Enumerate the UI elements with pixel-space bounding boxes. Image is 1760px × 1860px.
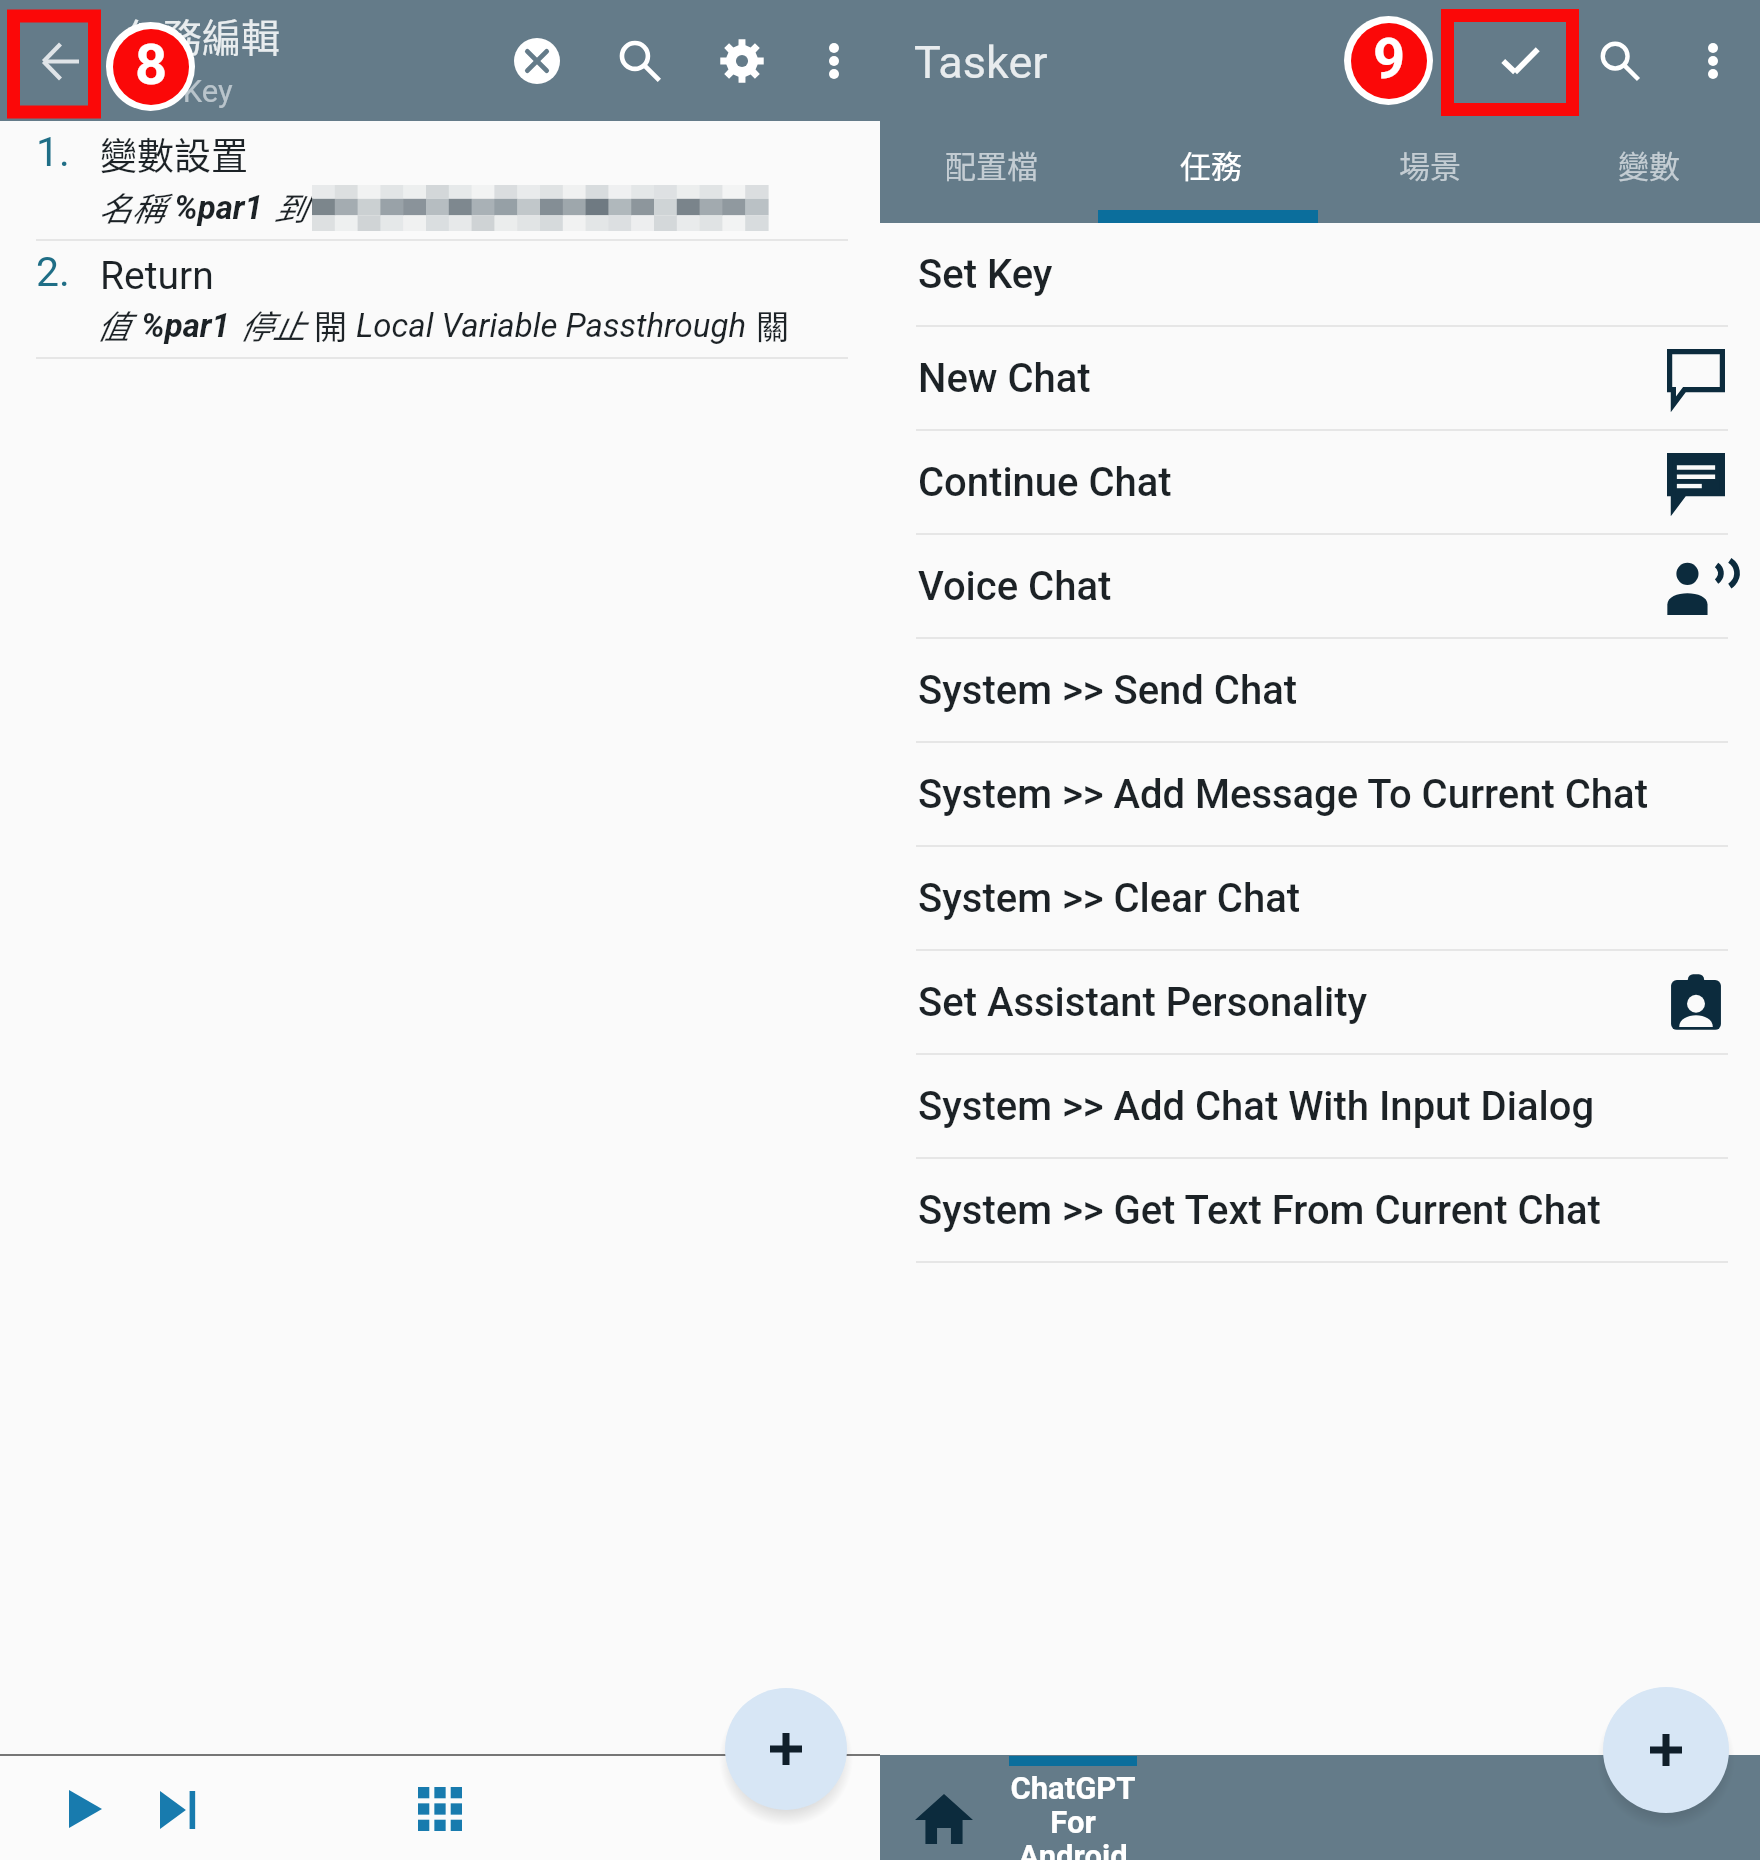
button[interactable]: Home	[906, 1781, 982, 1857]
button[interactable]: Accept	[1472, 10, 1568, 111]
button[interactable]: More options	[786, 10, 882, 111]
button[interactable]: Cancel	[489, 10, 585, 111]
staticText: 9	[1373, 26, 1406, 92]
staticText: System >> Clear Chat	[918, 875, 1301, 922]
staticText: %par1	[174, 188, 263, 227]
button[interactable]: System >> Get Text From Current Chat	[880, 1159, 1760, 1263]
button[interactable]: System >> Clear Chat	[880, 847, 1760, 951]
button[interactable]: Voice Chat	[880, 535, 1760, 639]
button[interactable]: 1.	[0, 121, 880, 241]
button[interactable]: Add action	[725, 1688, 847, 1810]
staticText: System >> Get Text From Current Chat	[918, 1187, 1601, 1234]
button[interactable]: System >> Add Chat With Input Dialog	[880, 1055, 1760, 1159]
button[interactable]: New Chat	[880, 327, 1760, 431]
button[interactable]: Add task	[1603, 1687, 1729, 1813]
button[interactable]: 變數	[1539, 121, 1759, 223]
staticText: 名稱	[98, 183, 164, 231]
button[interactable]: More options	[1665, 10, 1760, 111]
staticText: Set Assistant Personality	[918, 979, 1368, 1026]
staticText: 1.	[36, 128, 70, 176]
staticText: Set Key	[918, 251, 1053, 298]
button[interactable]: Set Assistant Personality	[880, 951, 1760, 1055]
button[interactable]: System >> Add Message To Current Chat	[880, 743, 1760, 847]
button[interactable]: 2.	[0, 241, 880, 359]
staticText: ChatGPT For Android	[1010, 1770, 1136, 1860]
staticText: 2.	[36, 248, 70, 296]
staticText: 任務	[1180, 142, 1242, 187]
staticText: 變數設置	[100, 127, 248, 181]
staticText: System >> Send Chat	[918, 667, 1298, 714]
staticText: 關	[756, 301, 789, 349]
staticText: Tasker	[914, 36, 1048, 89]
button[interactable]: Run	[52, 1776, 118, 1842]
button[interactable]: Back	[7, 9, 102, 119]
staticText: 值	[96, 301, 129, 349]
staticText: 到	[273, 183, 306, 231]
staticText: New Chat	[918, 355, 1091, 402]
staticText: Return	[100, 253, 214, 299]
button[interactable]: 場景	[1320, 121, 1540, 223]
button[interactable]: Search	[1572, 10, 1668, 111]
button[interactable]: Grid	[405, 1774, 475, 1844]
staticText: System >> Add Message To Current Chat	[918, 771, 1648, 818]
staticText: Voice Chat	[918, 563, 1112, 610]
button[interactable]: Set Key	[880, 223, 1760, 327]
button[interactable]: System >> Send Chat	[880, 639, 1760, 743]
button[interactable]: 配置檔	[881, 121, 1101, 223]
button[interactable]: Step	[144, 1776, 212, 1844]
button[interactable]: Continue Chat	[880, 431, 1760, 535]
button[interactable]: ChatGPT For Android	[989, 1755, 1157, 1860]
staticText: 停止	[239, 301, 305, 349]
staticText: 開	[314, 301, 347, 349]
staticText: 變數	[1618, 142, 1680, 187]
staticText: System >> Add Chat With Input Dialog	[918, 1083, 1595, 1130]
staticText: Set Key	[130, 73, 233, 109]
staticText: 配置檔	[945, 142, 1038, 187]
button[interactable]: Settings	[694, 10, 790, 111]
button[interactable]: 任務	[1101, 121, 1321, 223]
staticText: Continue Chat	[918, 459, 1172, 506]
button[interactable]: Search	[592, 10, 688, 111]
staticText: Local Variable Passthrough	[356, 306, 747, 345]
staticText: 8	[135, 32, 168, 98]
staticText: %par1	[141, 306, 230, 345]
staticText: 場景	[1399, 142, 1461, 187]
staticText: 任務編輯	[124, 7, 281, 63]
